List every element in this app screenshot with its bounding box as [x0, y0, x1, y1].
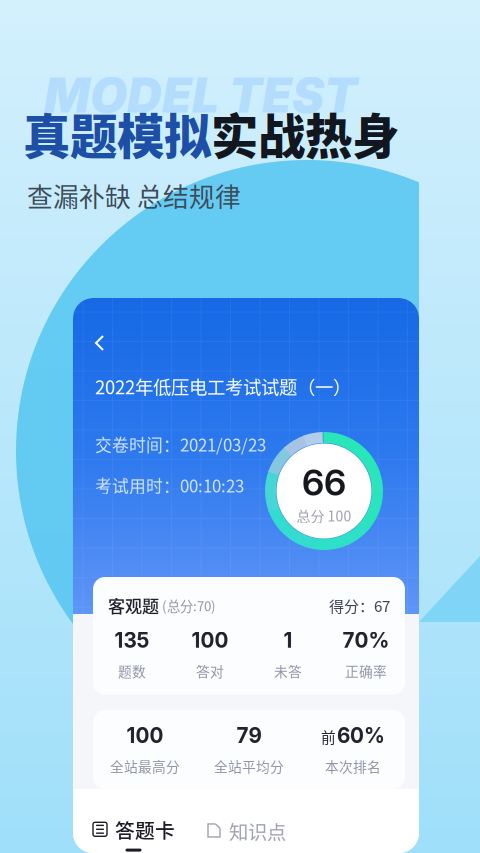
staticText: 总分 100 [296, 505, 351, 525]
staticText: 交卷时间：2021/03/23 [95, 432, 266, 456]
staticText: 全站最高分 [110, 756, 180, 776]
staticText: 前 [321, 726, 336, 747]
staticText: 未答 [274, 661, 302, 681]
staticText: 考试用时：00:10:23 [95, 473, 244, 497]
staticText: 题数 [118, 661, 146, 681]
staticText: (总分:70) [159, 596, 216, 615]
staticText: 答题卡 [115, 815, 175, 844]
staticText: 1 [283, 628, 292, 653]
staticText: 60% [337, 723, 385, 748]
staticText: 135 [114, 628, 149, 653]
staticText: 答对 [196, 661, 224, 681]
staticText: MODEL TEST [44, 66, 357, 124]
button[interactable]: 答题卡 [92, 815, 175, 852]
button[interactable]: Back [92, 332, 114, 354]
staticText: 66 [302, 461, 346, 504]
staticText: 79 [236, 723, 261, 748]
staticText: 客观题 [108, 593, 159, 618]
staticText: 100 [191, 628, 228, 653]
staticText: 全站平均分 [214, 756, 284, 776]
staticText: 得分：67 [329, 594, 390, 616]
staticText: 真题模拟 [23, 99, 211, 167]
button[interactable]: 知识点 [207, 817, 286, 845]
staticText: 100 [126, 723, 163, 748]
staticText: 本次排名 [325, 756, 381, 776]
staticText: 知识点 [229, 817, 286, 845]
staticText: 2022年低压电工考试试题（一） [95, 373, 351, 400]
staticText: 查漏补缺 总结规律 [27, 177, 241, 214]
staticText: 正确率 [345, 661, 387, 681]
staticText: 实战热身 [211, 99, 399, 167]
staticText: 70% [342, 628, 389, 653]
